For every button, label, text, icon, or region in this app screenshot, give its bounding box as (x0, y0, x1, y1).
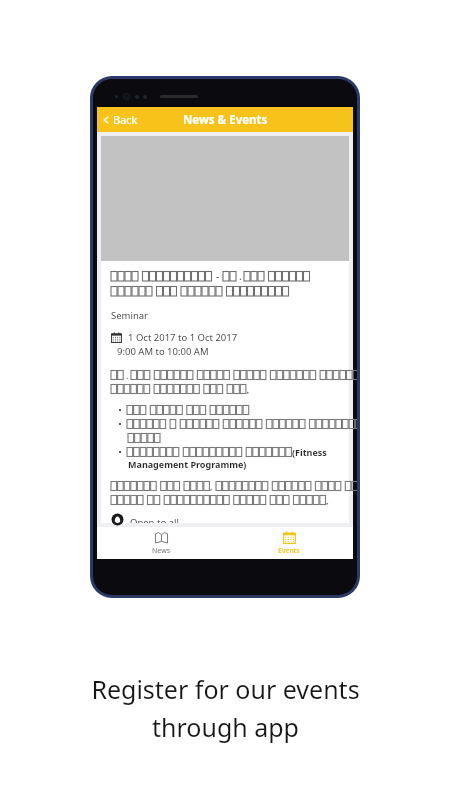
staticText: Management Programme) (128, 458, 247, 470)
staticText: , (210, 480, 213, 492)
staticText: News & Events (183, 112, 268, 128)
staticText: - (216, 269, 220, 283)
button[interactable]: Back (100, 109, 140, 130)
staticText: 1 Oct 2017 to 1 Oct 2017 (128, 331, 238, 344)
staticText: . (126, 369, 129, 381)
staticText: Back (113, 112, 138, 127)
staticText: 9:00 AM to 10:00 AM (117, 345, 209, 358)
button[interactable]: Events (225, 527, 353, 559)
button[interactable]: - (101, 136, 349, 523)
staticText: (Fitness (292, 446, 327, 458)
staticText: News (152, 546, 170, 556)
staticText: Open to all (130, 516, 179, 523)
staticText: Events (278, 546, 300, 556)
staticText: . (239, 269, 242, 283)
button[interactable]: Open to all (111, 516, 179, 523)
staticText: Seminar (111, 309, 149, 322)
button[interactable]: News (97, 527, 225, 559)
staticText: Register for our events (91, 672, 360, 706)
staticText: through app (152, 710, 299, 744)
